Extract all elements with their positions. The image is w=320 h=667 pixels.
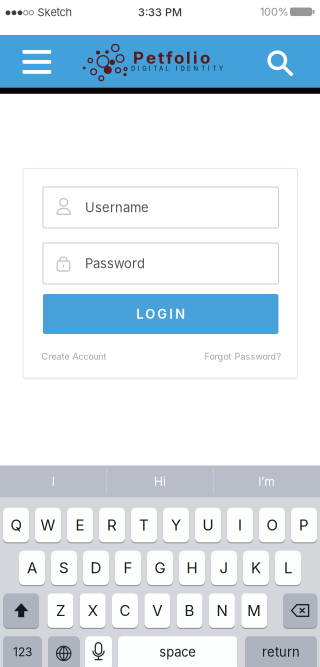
button[interactable]: E (67, 507, 93, 543)
button[interactable]: Delete (283, 592, 317, 629)
button[interactable]: G (147, 550, 173, 586)
staticText: return (262, 644, 300, 660)
button[interactable]: Hi (107, 465, 213, 497)
button[interactable]: P (291, 507, 317, 543)
button[interactable]: H (179, 550, 205, 586)
button[interactable]: Return (245, 635, 317, 667)
button[interactable]: Create Account (41, 351, 106, 362)
staticText: Forgot Password? (204, 351, 281, 362)
button[interactable]: I (227, 507, 253, 543)
staticText: L (284, 559, 292, 577)
button[interactable]: Space (118, 635, 237, 667)
staticText: K (251, 559, 261, 577)
button[interactable]: D (83, 550, 109, 586)
staticText: 3:33 PM (138, 6, 182, 19)
staticText: R (107, 516, 117, 534)
staticText: P (299, 516, 309, 534)
button[interactable]: Q (3, 507, 29, 543)
button[interactable]: M (241, 592, 267, 629)
staticText: Y (171, 516, 181, 534)
button[interactable]: K (243, 550, 269, 586)
staticText: T (139, 516, 149, 534)
button[interactable]: Next keyboard (48, 635, 79, 667)
button[interactable]: Shift (3, 592, 39, 629)
staticText: D (90, 559, 101, 577)
button[interactable]: R (99, 507, 125, 543)
staticText: Z (56, 602, 65, 619)
staticText: F (123, 559, 132, 577)
staticText: Petfolio (133, 47, 210, 68)
button[interactable]: C (112, 592, 138, 629)
button[interactable]: Forgot Password? (204, 351, 281, 362)
staticText: I’m (258, 474, 275, 489)
staticText: 123 (13, 645, 32, 659)
staticText: W (40, 516, 55, 534)
staticText: H (186, 559, 197, 577)
staticText: X (88, 602, 98, 619)
staticText: A (27, 559, 37, 577)
staticText: U (202, 516, 213, 534)
button[interactable]: Y (163, 507, 189, 543)
staticText: Username (85, 200, 149, 215)
button[interactable]: Dictate (85, 635, 112, 667)
staticText: space (159, 644, 196, 660)
button[interactable]: Z (47, 592, 73, 629)
button[interactable]: V (144, 592, 170, 629)
staticText: N (216, 602, 227, 619)
staticText: DIGITAL IDENTITY (131, 65, 223, 72)
button[interactable]: L (275, 550, 301, 586)
staticText: V (152, 602, 162, 619)
button[interactable]: J (211, 550, 237, 586)
staticText: L O G I N (136, 306, 185, 322)
staticText: C (119, 602, 130, 619)
button[interactable]: L O G I N (43, 294, 278, 334)
button[interactable]: I (0, 465, 106, 497)
button[interactable]: I’m (214, 465, 320, 497)
staticText: Hi (154, 474, 166, 489)
button[interactable]: T (131, 507, 157, 543)
staticText: G (154, 559, 165, 577)
staticText: Sketch (37, 6, 72, 19)
button[interactable]: F (115, 550, 141, 586)
button[interactable]: W (35, 507, 61, 543)
staticText: I (52, 474, 55, 489)
button[interactable]: S (51, 550, 77, 586)
staticText: B (185, 602, 195, 619)
staticText: S (59, 559, 69, 577)
staticText: I (238, 516, 242, 534)
button[interactable]: Username (0, 0, 320, 667)
staticText: O (266, 516, 277, 534)
staticText: 100% (260, 5, 289, 18)
button[interactable]: B (177, 592, 203, 629)
button[interactable]: X (80, 592, 106, 629)
staticText: M (247, 602, 261, 619)
button[interactable]: N (209, 592, 235, 629)
button[interactable]: Password (0, 0, 320, 667)
button[interactable]: O (259, 507, 285, 543)
button[interactable]: Menu (0, 0, 320, 667)
staticText: J (219, 559, 228, 577)
button[interactable]: A (19, 550, 45, 586)
button[interactable]: Numbers (3, 635, 42, 667)
button[interactable]: Search (0, 0, 320, 667)
button[interactable]: U (195, 507, 221, 543)
staticText: E (75, 516, 84, 534)
staticText: Password (85, 256, 145, 271)
staticText: Create Account (41, 351, 106, 362)
staticText: Q (10, 516, 21, 534)
